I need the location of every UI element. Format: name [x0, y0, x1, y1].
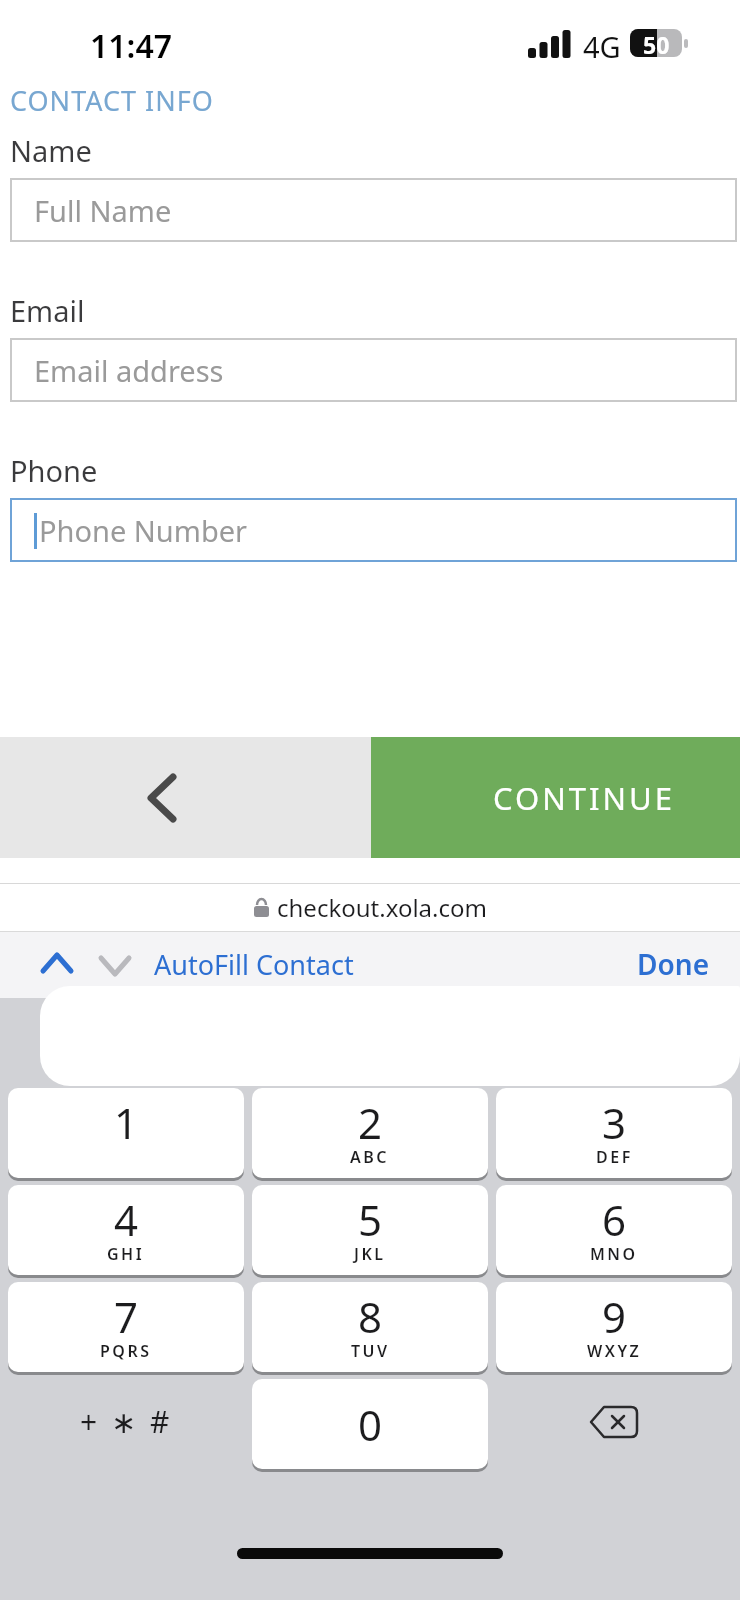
button[interactable]: AutoFill Contact	[154, 946, 354, 983]
button[interactable]: 8	[252, 1282, 488, 1372]
button[interactable]: 3	[496, 1088, 732, 1178]
staticText: GHI	[107, 1243, 145, 1265]
staticText: CONTACT INFO	[10, 82, 214, 119]
staticText: 4	[114, 1191, 139, 1248]
button[interactable]: CONTINUE	[371, 737, 740, 858]
staticText: 1	[114, 1094, 139, 1151]
staticText: Name	[10, 131, 92, 170]
button[interactable]: Full Name	[10, 178, 737, 242]
staticText: PQRS	[100, 1340, 152, 1362]
button[interactable]: Done	[637, 945, 710, 983]
button[interactable]: Email address	[10, 338, 737, 402]
staticText: 4G	[583, 27, 621, 66]
staticText: ABC	[350, 1146, 390, 1168]
staticText: checkout.xola.com	[277, 891, 487, 924]
staticText: 3	[602, 1094, 627, 1151]
button[interactable]: 7	[8, 1282, 244, 1372]
button[interactable]	[496, 1379, 732, 1469]
staticText: Full Name	[34, 191, 172, 230]
button[interactable]: 5	[252, 1185, 488, 1275]
staticText: 0	[358, 1396, 383, 1453]
button[interactable]: 1	[8, 1088, 244, 1178]
button[interactable]: 9	[496, 1282, 732, 1372]
staticText: Email	[10, 291, 85, 330]
staticText: 2	[358, 1094, 383, 1151]
staticText: 6	[602, 1191, 627, 1248]
button[interactable]: 6	[496, 1185, 732, 1275]
staticText: + ∗ #	[80, 1401, 173, 1442]
button[interactable]	[42, 954, 72, 972]
staticText: Phone	[10, 451, 98, 490]
staticText: JKL	[354, 1243, 386, 1265]
button[interactable]	[100, 957, 130, 975]
staticText: 8	[358, 1288, 383, 1345]
staticText: 50	[643, 29, 670, 57]
staticText: TUV	[351, 1340, 390, 1362]
staticText: WXYZ	[587, 1340, 642, 1362]
staticText: Phone Number	[39, 511, 248, 550]
staticText: 11:47	[90, 24, 173, 68]
staticText: 7	[114, 1288, 139, 1345]
button[interactable]: checkout.xola.com	[0, 884, 740, 931]
button[interactable]	[0, 737, 371, 858]
staticText: Email address	[34, 351, 224, 390]
button[interactable]: 0	[252, 1379, 488, 1469]
staticText: DEF	[596, 1146, 633, 1168]
button[interactable]: 4	[8, 1185, 244, 1275]
staticText: 5	[358, 1191, 383, 1248]
staticText: 9	[602, 1288, 627, 1345]
button[interactable]: 2	[252, 1088, 488, 1178]
button[interactable]: Phone Number	[10, 498, 737, 562]
staticText: CONTINUE	[493, 777, 675, 819]
staticText: MNO	[590, 1243, 638, 1265]
button[interactable]: + ∗ #	[8, 1379, 244, 1469]
